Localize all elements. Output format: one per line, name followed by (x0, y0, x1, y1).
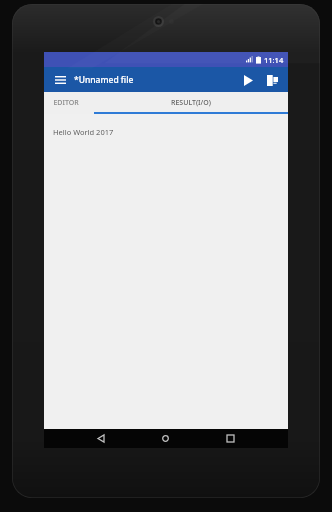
staticText: *Unnamed file (74, 74, 134, 86)
staticText: Hello World 2017 (53, 127, 114, 137)
button[interactable]: Save file (261, 69, 283, 91)
button[interactable]: RESULT(I/O) (94, 92, 288, 114)
button[interactable]: Run (237, 69, 259, 91)
button[interactable]: Recent apps (221, 429, 240, 448)
staticText: RESULT(I/O) (171, 98, 211, 108)
button[interactable]: Home (156, 429, 175, 448)
staticText: 11:14 (264, 55, 284, 65)
button[interactable]: Open navigation menu (51, 71, 69, 89)
button[interactable]: Back (91, 429, 110, 448)
staticText: EDITOR (53, 98, 79, 108)
button[interactable]: EDITOR (44, 92, 88, 114)
